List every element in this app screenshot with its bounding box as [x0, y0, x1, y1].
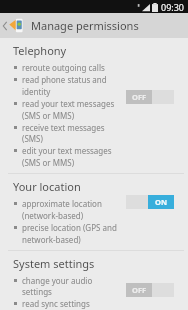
- button[interactable]: read sync settings: [0, 298, 188, 310]
- button[interactable]: approximate location: [0, 198, 188, 222]
- staticText: (SMS or MMS): [22, 110, 75, 121]
- button[interactable]: Navigate up, Manage permissions: [0, 13, 188, 38]
- staticText: edit your text messages: [22, 145, 112, 156]
- button[interactable]: Permission on: [126, 195, 174, 209]
- staticText: network-based): [22, 234, 81, 245]
- staticText: read phone status and: [22, 74, 107, 85]
- button[interactable]: edit your text messages: [0, 145, 188, 169]
- staticText: Manage permissions: [31, 18, 139, 33]
- staticText: OFF: [132, 285, 147, 295]
- staticText: Telephony: [13, 43, 67, 58]
- staticText: 09:30: [161, 1, 185, 13]
- staticText: System settings: [13, 256, 95, 271]
- staticText: receive text messages (SMS): [22, 122, 118, 144]
- staticText: read your text messages: [22, 98, 115, 109]
- button[interactable]: read your text messages: [0, 98, 188, 122]
- staticText: change your audio settings: [22, 275, 118, 297]
- staticText: (SMS or MMS): [22, 157, 75, 168]
- button[interactable]: change your audio settings: [0, 275, 188, 298]
- button[interactable]: Permission off: [126, 90, 174, 104]
- staticText: read sync settings: [22, 298, 90, 309]
- staticText: reroute outgoing calls: [22, 62, 105, 73]
- button[interactable]: reroute outgoing calls: [0, 62, 188, 74]
- staticText: precise location (GPS and: [22, 222, 117, 233]
- button[interactable]: read phone status and: [0, 74, 188, 98]
- staticText: (network-based): [22, 210, 84, 221]
- button[interactable]: Permission off: [126, 283, 174, 297]
- staticText: identity: [22, 86, 51, 97]
- staticText: Your location: [13, 179, 81, 194]
- button[interactable]: receive text messages (SMS): [0, 122, 188, 145]
- staticText: OFF: [132, 92, 147, 102]
- staticText: approximate location: [22, 198, 102, 209]
- button[interactable]: precise location (GPS and: [0, 222, 188, 246]
- staticText: ON: [155, 197, 168, 207]
